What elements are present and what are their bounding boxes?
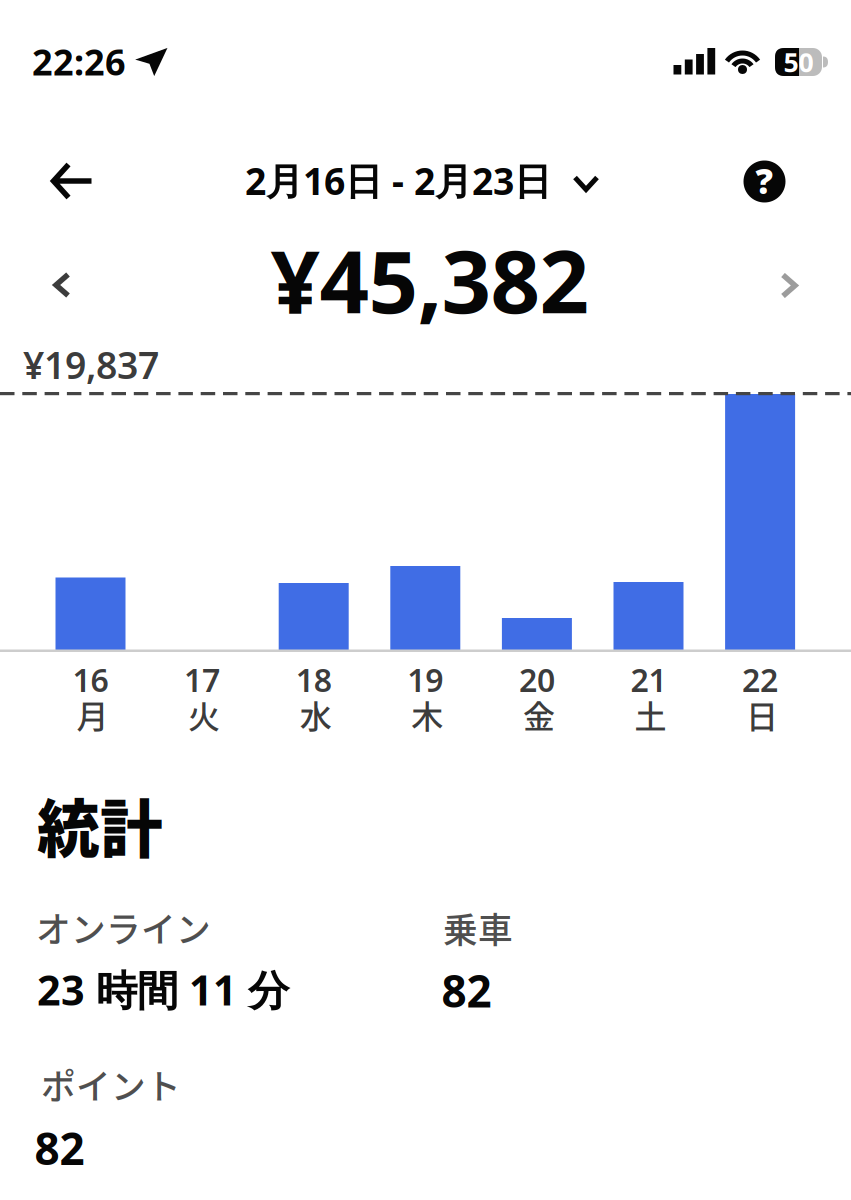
- staticText: 18: [296, 658, 332, 701]
- staticText: 16: [72, 658, 108, 701]
- staticText: 19: [407, 658, 443, 701]
- button[interactable]: 戻る: [42, 153, 102, 208]
- staticText: 金: [523, 691, 555, 738]
- staticText: 23 時間 11 分: [37, 961, 289, 1018]
- button[interactable]: 2月16日 - 2月23日: [245, 155, 597, 206]
- staticText: 82: [34, 1119, 84, 1177]
- staticText: 20: [519, 658, 555, 701]
- staticText: 木: [411, 691, 443, 738]
- staticText: 50: [783, 44, 813, 80]
- staticText: 月: [76, 691, 108, 738]
- staticText: ?: [755, 157, 773, 203]
- staticText: 土: [634, 691, 666, 738]
- button[interactable]: ヘルプ: [743, 158, 785, 204]
- staticText: 2月16日 - 2月23日: [245, 155, 551, 206]
- staticText: 統計: [37, 779, 163, 870]
- staticText: 乗車: [443, 903, 513, 953]
- staticText: 22: [742, 658, 778, 701]
- staticText: 水: [300, 691, 332, 738]
- staticText: 17: [184, 658, 220, 701]
- staticText: オンライン: [36, 902, 211, 953]
- button[interactable]: 次の週: [769, 261, 809, 310]
- staticText: ¥45,382: [270, 222, 589, 337]
- staticText: 82: [441, 961, 491, 1020]
- staticText: 火: [188, 691, 220, 738]
- staticText: 日: [746, 691, 778, 738]
- staticText: ¥19,837: [23, 340, 159, 389]
- staticText: 21: [630, 658, 666, 701]
- staticText: 22:26: [32, 38, 126, 85]
- staticText: ポイント: [41, 1059, 181, 1110]
- button[interactable]: 前の週: [42, 260, 82, 309]
